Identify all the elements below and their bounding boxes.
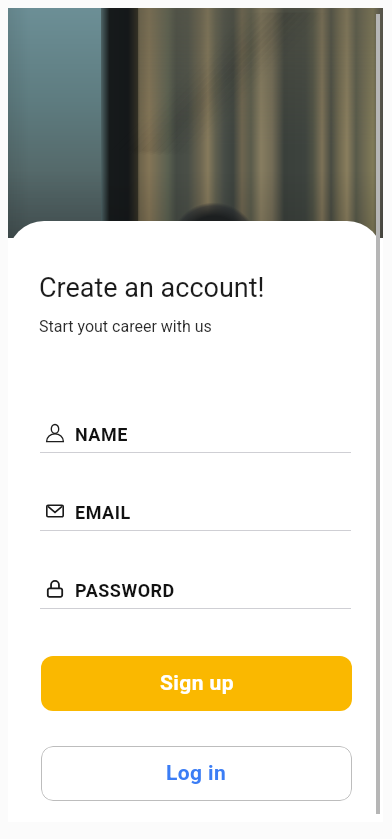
staticText: PASSWORD bbox=[75, 580, 175, 601]
button[interactable]: NAME bbox=[40, 416, 351, 453]
button[interactable]: Sign up bbox=[41, 656, 352, 711]
staticText: Log in bbox=[166, 761, 227, 786]
staticText: EMAIL bbox=[75, 502, 131, 523]
staticText: Sign up bbox=[160, 671, 234, 696]
staticText: NAME bbox=[75, 424, 128, 445]
button[interactable]: PASSWORD bbox=[40, 572, 351, 609]
staticText: Start yout career with us bbox=[39, 317, 212, 336]
button[interactable]: Log in bbox=[41, 746, 352, 801]
staticText: Create an account! bbox=[39, 272, 265, 304]
button[interactable]: EMAIL bbox=[40, 494, 351, 531]
